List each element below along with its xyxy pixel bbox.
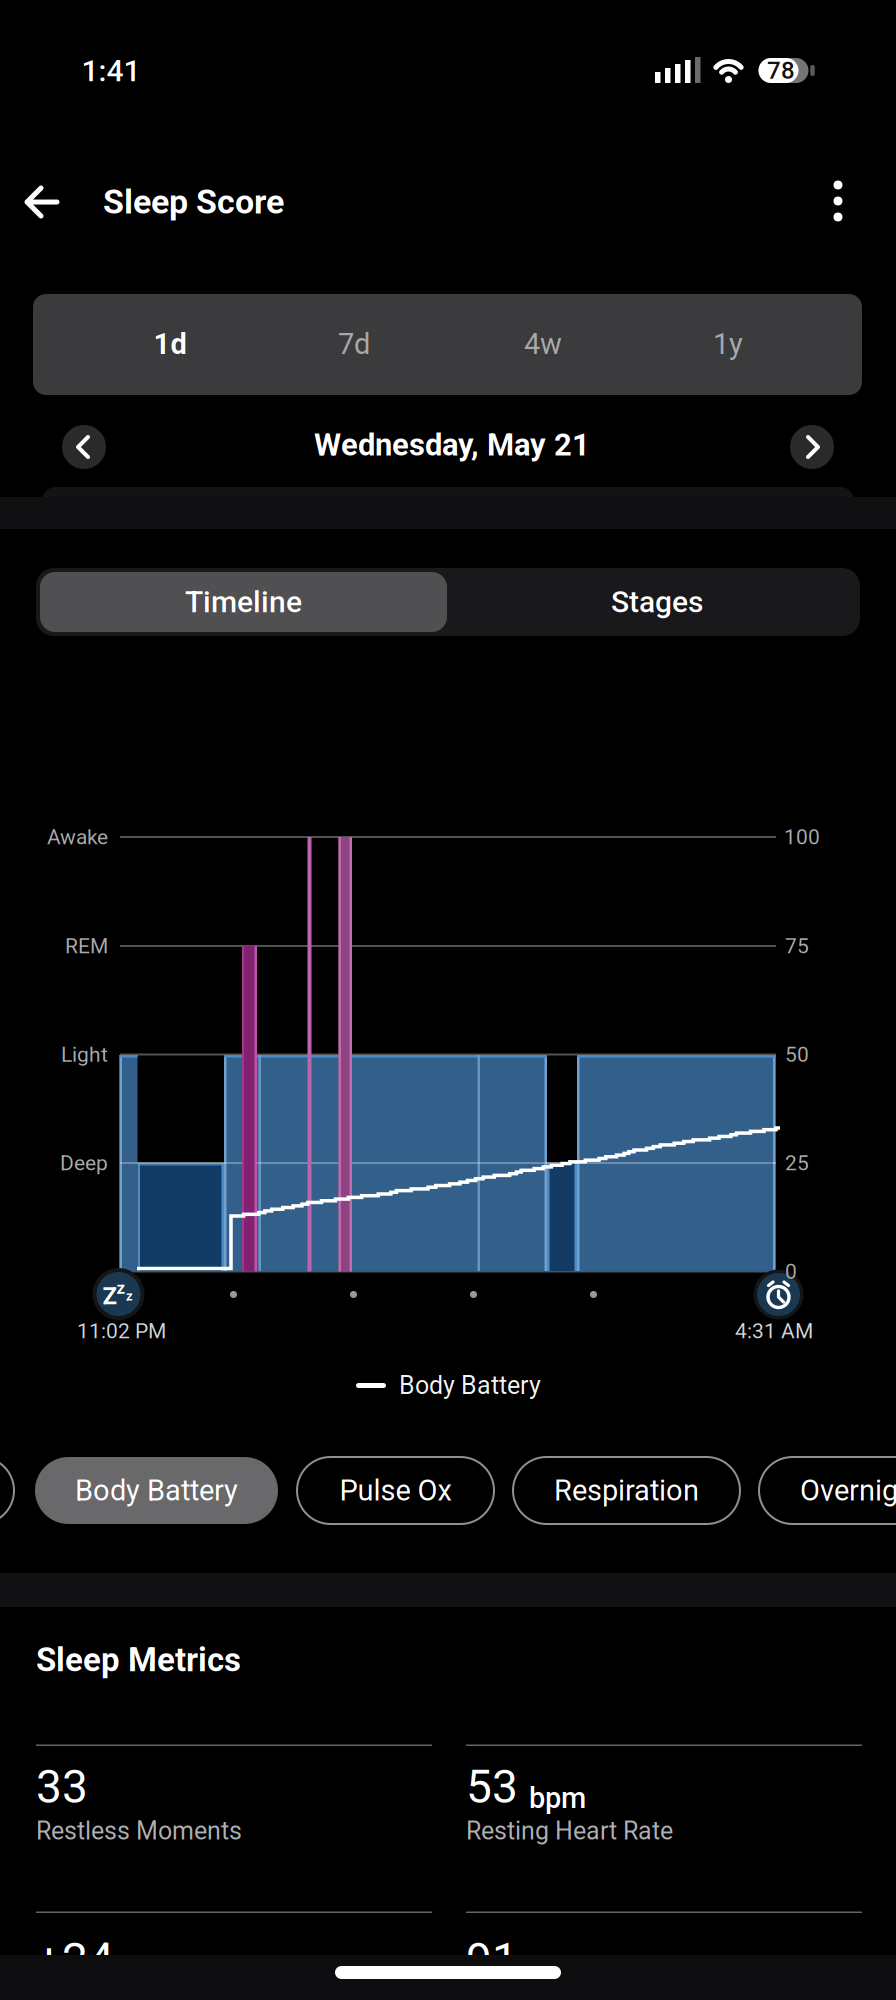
staticText: 11:02 PM bbox=[77, 1319, 166, 1343]
button[interactable]: More options bbox=[816, 171, 860, 231]
staticText: 33 bbox=[36, 1760, 88, 1814]
staticText: +24 bbox=[36, 1933, 114, 1987]
button[interactable]: Stages bbox=[453, 572, 860, 632]
staticText: REM bbox=[65, 934, 108, 958]
button[interactable]: Overnight bbox=[759, 1457, 896, 1524]
staticText: z bbox=[126, 1288, 133, 1304]
staticText: 1d bbox=[153, 327, 186, 361]
staticText: Sleep Metrics bbox=[36, 1641, 241, 1679]
staticText: 100 bbox=[784, 825, 820, 849]
button[interactable]: Body Battery bbox=[35, 1457, 278, 1524]
staticText: 7d bbox=[338, 327, 370, 361]
staticText: Z bbox=[102, 1282, 117, 1310]
staticText: Sleep Score bbox=[103, 182, 284, 222]
staticText: Timeline bbox=[185, 584, 302, 620]
staticText: 1:41 bbox=[81, 53, 140, 89]
staticText: Wednesday, May 21 bbox=[314, 427, 590, 463]
staticText: 1y bbox=[713, 327, 743, 361]
button[interactable]: 7d bbox=[261, 293, 446, 394]
staticText: 91 bbox=[466, 1933, 518, 1987]
staticText: Deep bbox=[60, 1151, 108, 1175]
button[interactable]: Previous day bbox=[62, 425, 106, 469]
button[interactable]: 1y bbox=[635, 293, 820, 394]
staticText: z bbox=[116, 1278, 125, 1298]
staticText: Body Battery bbox=[399, 1371, 541, 1400]
staticText: Light bbox=[61, 1042, 108, 1067]
button[interactable]: 1d bbox=[77, 293, 262, 394]
staticText: 53 bbox=[466, 1760, 518, 1814]
button[interactable]: Previous metric bbox=[0, 1457, 14, 1524]
staticText: Restless Moments bbox=[36, 1816, 242, 1846]
staticText: 75 bbox=[785, 934, 809, 958]
staticText: Respiration bbox=[554, 1473, 699, 1507]
staticText: Overnight bbox=[800, 1473, 896, 1507]
button[interactable]: Pulse Ox bbox=[297, 1457, 494, 1524]
staticText: Body Battery bbox=[75, 1473, 238, 1507]
staticText: 4w bbox=[524, 327, 562, 361]
button[interactable]: Timeline bbox=[40, 572, 447, 632]
button[interactable]: Respiration bbox=[513, 1457, 740, 1524]
staticText: Stages bbox=[611, 584, 703, 620]
staticText: 50 bbox=[785, 1042, 809, 1067]
staticText: Resting Heart Rate bbox=[466, 1816, 673, 1846]
staticText: Awake bbox=[47, 825, 108, 849]
staticText: 0 bbox=[785, 1259, 797, 1284]
button[interactable]: 4w bbox=[450, 293, 635, 394]
staticText: bpm bbox=[529, 1781, 586, 1815]
staticText: 4:31 AM bbox=[735, 1319, 813, 1343]
button[interactable]: Back bbox=[20, 180, 64, 224]
staticText: Pulse Ox bbox=[339, 1473, 451, 1507]
staticText: 25 bbox=[785, 1151, 809, 1175]
button[interactable]: Next day bbox=[790, 425, 834, 469]
staticText: 78 bbox=[767, 56, 795, 84]
